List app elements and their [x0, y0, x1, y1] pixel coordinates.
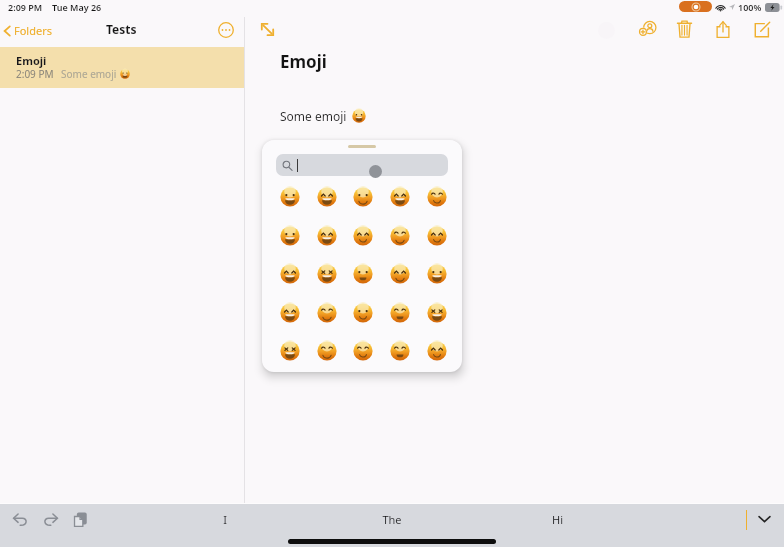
button[interactable]: The: [352, 507, 432, 531]
staticText: 2:09 PM: [8, 1, 43, 13]
staticText: Emoji: [16, 53, 47, 68]
staticText: Emoji: [280, 50, 327, 73]
button[interactable]: Emoji: [348, 336, 378, 366]
button[interactable]: More options: [214, 18, 237, 41]
staticText: Folders: [14, 23, 52, 38]
staticText: The: [382, 512, 402, 527]
button[interactable]: Emoji: [275, 298, 305, 328]
staticText: Tests: [106, 21, 137, 37]
button[interactable]: Emoji: [422, 298, 452, 328]
button[interactable]: Emoji: [275, 221, 305, 251]
button[interactable]: Emoji: [312, 336, 342, 366]
staticText: Tue May 26: [52, 1, 102, 13]
button[interactable]: Compose: [750, 18, 774, 42]
button[interactable]: Emoji: [385, 182, 415, 212]
staticText: Some emoji: [280, 108, 347, 124]
button[interactable]: Emoji: [385, 298, 415, 328]
button[interactable]: Emoji: [312, 182, 342, 212]
staticText: Some emoji: [61, 67, 117, 81]
button[interactable]: Share: [711, 17, 735, 41]
button[interactable]: Emoji: [275, 182, 305, 212]
button[interactable]: Emoji: [385, 259, 415, 289]
button[interactable]: Emoji: [422, 182, 452, 212]
button[interactable]: Emoji: [422, 259, 452, 289]
button[interactable]: Emoji: [275, 336, 305, 366]
staticText: I: [223, 512, 227, 527]
button[interactable]: Emoji: [385, 221, 415, 251]
button[interactable]: Emoji: [275, 259, 305, 289]
button[interactable]: I: [185, 507, 265, 531]
button[interactable]: Undo: [7, 506, 33, 532]
button[interactable]: Emoji: [422, 221, 452, 251]
staticText: 2:09 PM: [16, 67, 54, 81]
staticText: Hi: [552, 512, 563, 527]
button[interactable]: Folders: [1, 20, 54, 41]
button[interactable]: Emoji: [312, 221, 342, 251]
button[interactable]: Emoji: [422, 336, 452, 366]
button[interactable]: Emoji: [348, 298, 378, 328]
button[interactable]: Redo: [37, 506, 63, 532]
button[interactable]: Hi: [517, 507, 597, 531]
button[interactable]: Paste: [67, 506, 93, 532]
button[interactable]: Add people: [636, 17, 660, 41]
button[interactable]: Emoji: [348, 259, 378, 289]
button[interactable]: Delete: [672, 17, 696, 41]
staticText: 100%: [738, 1, 762, 13]
button[interactable]: Emoji: [348, 221, 378, 251]
button[interactable]: Emoji: [385, 336, 415, 366]
button[interactable]: Expand: [255, 17, 279, 41]
button[interactable]: Emoji: [312, 298, 342, 328]
button[interactable]: Emoji: [0, 47, 244, 88]
button[interactable]: Emoji: [348, 182, 378, 212]
button[interactable]: Emoji: [312, 259, 342, 289]
button[interactable]: Hide keyboard: [751, 506, 777, 532]
button[interactable]: [276, 154, 448, 176]
